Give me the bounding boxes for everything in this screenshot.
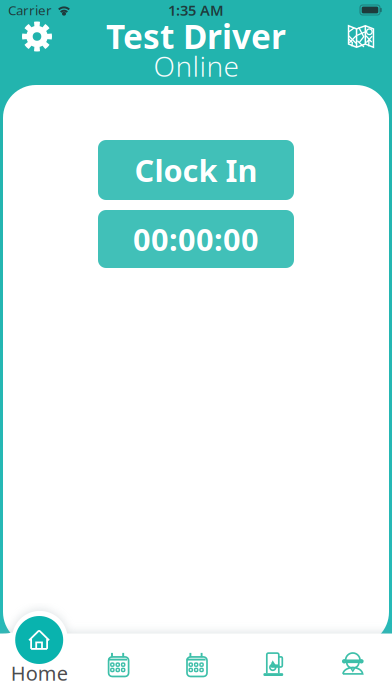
staticText: Online	[153, 47, 238, 85]
button[interactable]: Home	[0, 612, 78, 696]
staticText: 00:00:00	[133, 219, 259, 259]
staticText: Clock In	[134, 150, 257, 190]
staticText: Home	[11, 660, 68, 686]
button[interactable]: Fuel	[235, 612, 314, 696]
button[interactable]: Bookings	[157, 612, 235, 696]
button[interactable]: Profile	[314, 612, 392, 696]
staticText: Test Driver	[106, 14, 286, 58]
staticText: Carrier	[8, 1, 52, 19]
button[interactable]: Home	[0, 616, 78, 664]
button[interactable]: Schedule	[78, 612, 157, 696]
button[interactable]: Clock In	[98, 140, 294, 200]
button[interactable]: Map	[339, 14, 383, 58]
button[interactable]: 00:00:00	[98, 210, 294, 268]
staticText: 1:35 AM	[168, 0, 224, 20]
button[interactable]: Settings	[15, 14, 59, 58]
